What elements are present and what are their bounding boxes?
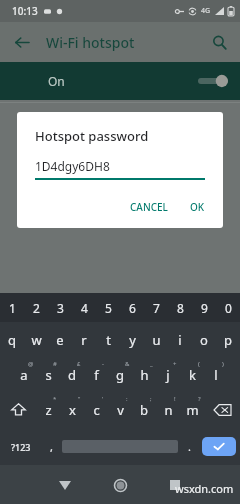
staticText: WPA2 PSK: [48, 169, 96, 183]
button[interactable]: t: [96, 322, 120, 357]
button[interactable]: Search: [204, 27, 234, 57]
staticText: -: [102, 360, 104, 368]
button[interactable]: 6: [120, 293, 144, 322]
button[interactable]: Enter: [202, 437, 236, 456]
button[interactable]: r: [72, 322, 96, 357]
staticText: OK: [190, 200, 205, 214]
button[interactable]: l: [204, 357, 228, 392]
button[interactable]: y: [120, 322, 144, 357]
button[interactable]: u: [144, 322, 168, 357]
button[interactable]: g: [108, 357, 132, 392]
button[interactable]: v: [108, 392, 132, 427]
button[interactable]: k: [180, 357, 204, 392]
staticText: 4: [81, 300, 88, 316]
staticText: s: [45, 366, 52, 384]
button[interactable]: ,: [42, 429, 60, 464]
staticText: q: [8, 331, 16, 349]
staticText: 2: [33, 300, 40, 316]
button[interactable]: a: [12, 357, 36, 392]
button[interactable]: i: [168, 322, 192, 357]
button[interactable]: m: [180, 392, 204, 427]
staticText: 9: [201, 300, 208, 316]
button[interactable]: .: [180, 429, 198, 464]
staticText: 1: [9, 300, 16, 316]
staticText: 7: [153, 300, 160, 316]
button[interactable]: Shift: [0, 392, 36, 427]
staticText: w: [31, 331, 42, 349]
staticText: h: [140, 366, 149, 384]
button[interactable]: h: [132, 357, 156, 392]
staticText: ,: [50, 439, 53, 454]
button[interactable]: w: [24, 322, 48, 357]
staticText: :: [126, 395, 128, 403]
staticText: +: [173, 360, 177, 368]
button[interactable]: 3: [48, 293, 72, 322]
staticText: !: [174, 395, 176, 403]
button[interactable]: CANCEL: [122, 194, 176, 220]
button[interactable]: e: [48, 322, 72, 357]
button[interactable]: Back: [6, 27, 36, 57]
button[interactable]: On: [0, 62, 240, 100]
button[interactable]: o: [192, 322, 216, 357]
button[interactable]: x: [60, 392, 84, 427]
button[interactable]: Back: [52, 472, 78, 498]
staticText: t: [106, 331, 111, 349]
button[interactable]: n: [156, 392, 180, 427]
button[interactable]: 1: [0, 293, 24, 322]
staticText: a: [20, 366, 28, 384]
button[interactable]: d: [60, 357, 84, 392]
staticText: Hotspot password: [48, 205, 143, 220]
button[interactable]: z: [36, 392, 60, 427]
staticText: p: [224, 331, 232, 349]
staticText: e: [56, 331, 64, 349]
button[interactable]: Home: [107, 472, 133, 498]
staticText: u: [152, 331, 161, 349]
staticText: b: [140, 401, 148, 419]
staticText: ': [102, 395, 104, 403]
staticText: o: [200, 331, 208, 349]
staticText: ?: [198, 395, 201, 403]
button[interactable]: 8: [168, 293, 192, 322]
button[interactable]: 4: [72, 293, 96, 322]
staticText: v: [117, 401, 124, 419]
staticText: y: [129, 331, 136, 349]
staticText: ": [78, 395, 81, 403]
staticText: ): [222, 360, 224, 368]
staticText: z: [45, 401, 52, 419]
button[interactable]: 7: [144, 293, 168, 322]
button[interactable]: OK: [182, 194, 213, 220]
staticText: CANCEL: [130, 200, 168, 214]
button[interactable]: 9: [192, 293, 216, 322]
button[interactable]: c: [84, 392, 108, 427]
button[interactable]: b: [132, 392, 156, 427]
staticText: n: [164, 401, 173, 419]
button[interactable]: p: [216, 322, 240, 357]
staticText: l: [214, 366, 218, 384]
button[interactable]: q: [0, 322, 24, 357]
button[interactable]: s: [36, 357, 60, 392]
button[interactable]: f: [84, 357, 108, 392]
staticText: 0: [225, 300, 232, 316]
staticText: #: [53, 360, 57, 368]
staticText: .: [188, 439, 191, 454]
button[interactable]: Backspace: [204, 392, 240, 427]
staticText: j: [166, 366, 170, 384]
button[interactable]: 2: [24, 293, 48, 322]
staticText: k: [189, 366, 196, 384]
staticText: Wi-Fi hotspot: [46, 33, 135, 52]
button[interactable]: 5: [96, 293, 120, 322]
button[interactable]: 0: [216, 293, 240, 322]
staticText: ;: [150, 395, 152, 403]
staticText: _: [150, 360, 153, 368]
staticText: £: [77, 360, 81, 368]
button[interactable]: Recents: [162, 472, 188, 498]
button[interactable]: ?123: [0, 429, 42, 464]
staticText: ?123: [11, 441, 31, 453]
staticText: 3: [57, 300, 64, 316]
staticText: wsxdn.com: [175, 481, 234, 496]
button[interactable]: j: [156, 357, 180, 392]
staticText: i: [178, 331, 182, 349]
staticText: m: [186, 401, 199, 419]
staticText: d: [68, 366, 76, 384]
